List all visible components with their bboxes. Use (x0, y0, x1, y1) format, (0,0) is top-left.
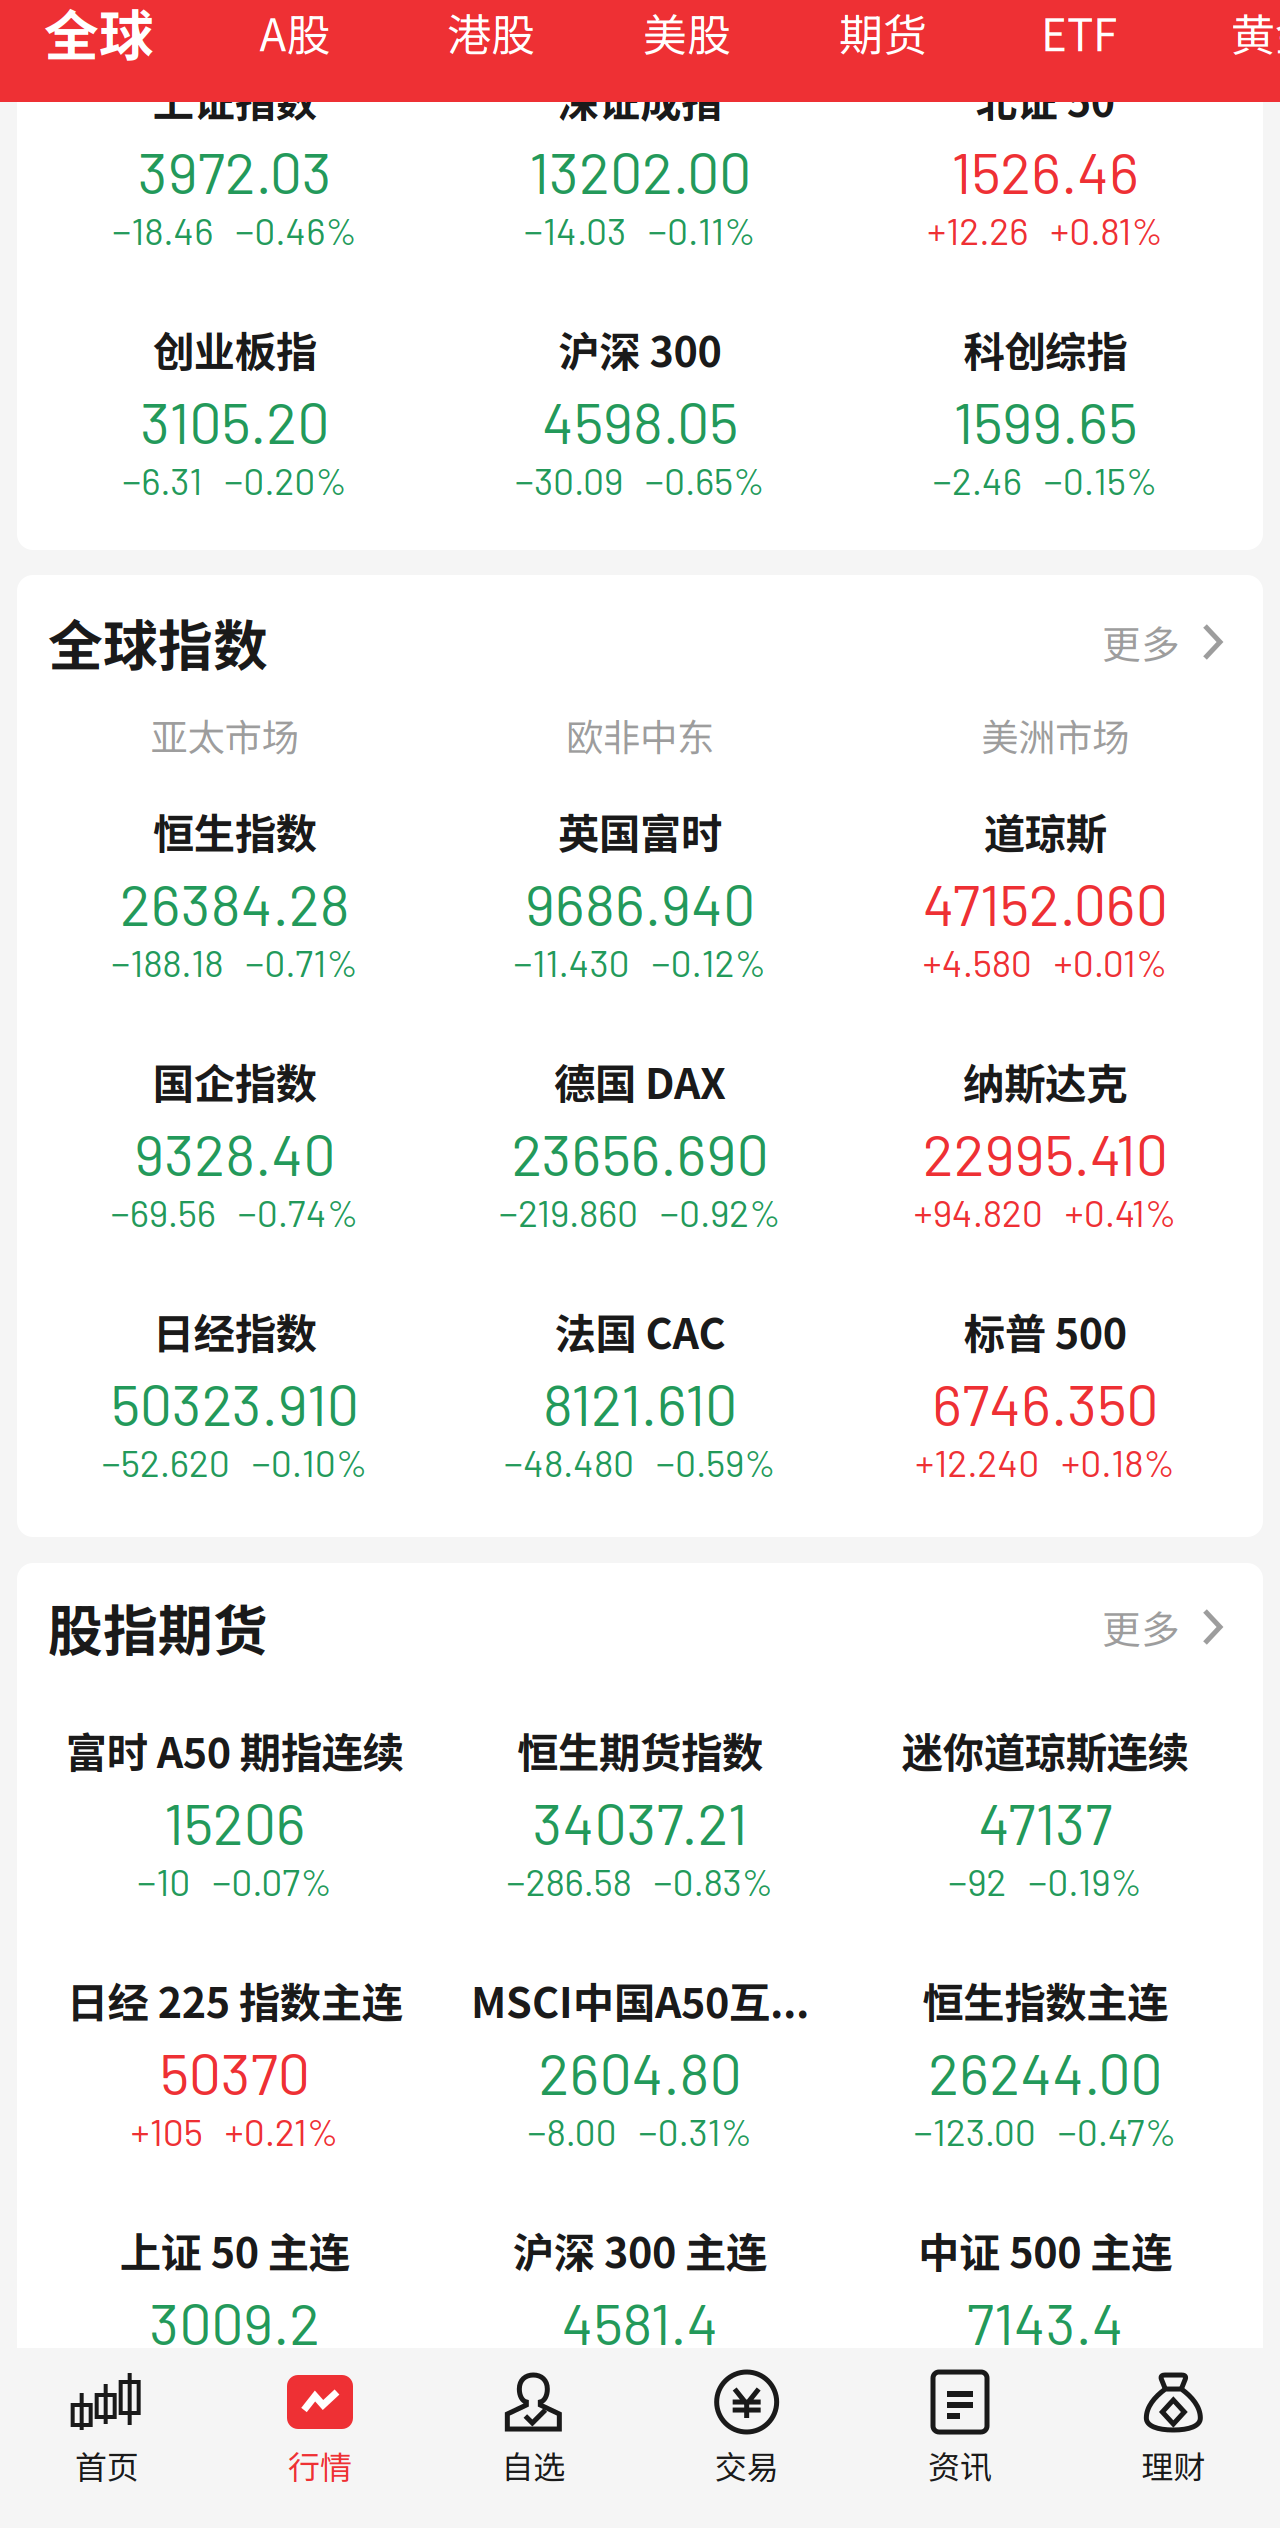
button[interactable]: 更多 (1102, 614, 1223, 670)
staticText: 沪深 300 (558, 319, 721, 379)
staticText: 自选 (501, 2442, 565, 2488)
button[interactable]: 期货 (785, 0, 981, 64)
button[interactable]: A股 (197, 0, 393, 64)
staticText: −14.03 (524, 208, 626, 252)
button[interactable]: 沪深 300 主连 (437, 2227, 843, 2401)
staticText: 26244.00 (928, 2038, 1162, 2106)
button[interactable]: 恒生指数主连 (843, 1977, 1248, 2151)
staticText: 富时 A50 期指连续 (66, 1720, 404, 1780)
staticText: −0.31% (638, 2109, 752, 2153)
button[interactable]: 首页 (0, 2372, 213, 2481)
staticText: 4581.4 (561, 2288, 718, 2356)
staticText: −0.07% (212, 1859, 332, 1903)
button[interactable]: 恒生期货指数 (437, 1727, 843, 1901)
staticText: −188.18 (111, 940, 223, 984)
staticText: −0.65% (645, 458, 765, 502)
button[interactable]: 英国富时 (437, 808, 843, 982)
button[interactable]: 中证 500 主连 (843, 2227, 1248, 2401)
button[interactable]: 北证 50 (843, 76, 1248, 250)
staticText: 恒生指数 (153, 801, 317, 861)
staticText: 欧非中东 (566, 708, 714, 762)
staticText: 道琼斯 (984, 801, 1107, 861)
staticText: 47137 (978, 1788, 1112, 1856)
staticText: +12.240 (915, 1440, 1039, 1484)
button[interactable]: 道琼斯 (843, 808, 1248, 982)
staticText: 日经指数 (153, 1301, 317, 1361)
button[interactable]: 标普 500 (843, 1308, 1248, 1482)
staticText: 北证 50 (976, 69, 1115, 129)
staticText: −0.11% (648, 208, 756, 252)
button[interactable]: 深证成指 (437, 76, 843, 250)
staticText: 迷你道琼斯连续 (902, 1720, 1189, 1780)
button[interactable]: MSCI中国A50互... (437, 1977, 843, 2151)
staticText: MSCI中国A50互... (471, 1970, 809, 2030)
staticText: 1526.46 (951, 137, 1139, 205)
staticText: 22995.410 (923, 1119, 1168, 1187)
staticText: −8.00 (527, 2109, 616, 2153)
staticText: 亚太市场 (151, 708, 299, 762)
button[interactable]: 迷你道琼斯连续 (843, 1727, 1248, 1901)
button[interactable]: 国企指数 (32, 1058, 437, 1232)
button[interactable]: 法国 CAC (437, 1308, 843, 1482)
button[interactable]: 理财 (1067, 2372, 1280, 2481)
button[interactable]: 德国 DAX (437, 1058, 843, 1232)
staticText: 9686.940 (525, 869, 755, 937)
button[interactable]: 交易 (640, 2372, 853, 2481)
button[interactable]: 科创综指 (843, 326, 1248, 500)
button[interactable]: ETF (981, 0, 1177, 64)
staticText: 恒生期货指数 (517, 1720, 763, 1780)
button[interactable]: 日经 225 指数主连 (32, 1977, 437, 2151)
button[interactable]: 上证 50 主连 (32, 2227, 437, 2401)
staticText: −30.09 (515, 458, 623, 502)
staticText: 行情 (288, 2442, 352, 2488)
staticText: 3972.03 (138, 137, 332, 205)
staticText: 1599.65 (953, 387, 1137, 455)
staticText: 2604.80 (538, 2038, 741, 2106)
staticText: 8121.610 (543, 1369, 737, 1437)
staticText: 国企指数 (153, 1051, 317, 1111)
staticText: −0.59% (656, 1440, 776, 1484)
staticText: 23656.690 (511, 1119, 768, 1187)
staticText: −48.480 (504, 1440, 634, 1484)
button[interactable]: 富时 A50 期指连续 (32, 1727, 437, 1901)
button[interactable]: 上证指数 (32, 76, 437, 250)
button[interactable]: 资讯 (853, 2372, 1067, 2481)
staticText: 英国富时 (558, 801, 722, 861)
staticText: 26384.28 (120, 869, 350, 937)
staticText: 德国 DAX (554, 1051, 726, 1111)
staticText: 沪深 300 主连 (513, 2220, 767, 2280)
button[interactable]: 纳斯达克 (843, 1058, 1248, 1232)
staticText: −3.6 (133, 2359, 200, 2403)
button[interactable]: 恒生指数 (32, 808, 437, 982)
button[interactable]: 自选 (427, 2372, 640, 2481)
button[interactable]: 行情 (213, 2372, 427, 2481)
staticText: −6.31 (122, 458, 202, 502)
staticText: −0.57% (1042, 2359, 1161, 2403)
staticText: 全球 (44, 0, 154, 72)
staticText: 上证 50 主连 (120, 2220, 350, 2280)
button[interactable]: 美股 (589, 0, 785, 64)
staticText: +4.580 (923, 940, 1032, 984)
staticText: −0.12% (651, 940, 766, 984)
button[interactable]: 港股 (393, 0, 589, 64)
staticText: 期货 (839, 0, 927, 64)
staticText: −18.46 (112, 208, 213, 252)
staticText: A股 (259, 0, 330, 64)
staticText: 7143.4 (967, 2288, 1124, 2356)
staticText: −69.56 (111, 1190, 216, 1234)
staticText: 日经 225 指数主连 (67, 1970, 403, 2030)
button[interactable]: 创业板指 (32, 326, 437, 500)
staticText: 6746.350 (932, 1369, 1158, 1437)
button[interactable]: 更多 (1102, 1599, 1223, 1655)
button[interactable]: 全球 (1, 0, 197, 64)
staticText: 3105.20 (140, 387, 329, 455)
button[interactable]: 日经指数 (32, 1308, 437, 1482)
button[interactable]: 沪深 300 (437, 326, 843, 500)
staticText: +0.01% (1054, 940, 1168, 984)
button[interactable]: 黄金 (1177, 0, 1280, 64)
staticText: −52.620 (102, 1440, 230, 1484)
staticText: −0.12% (222, 2359, 337, 2403)
staticText: +0.41% (1065, 1190, 1177, 1234)
staticText: 50370 (160, 2038, 310, 2106)
staticText: +0.81% (1050, 208, 1163, 252)
